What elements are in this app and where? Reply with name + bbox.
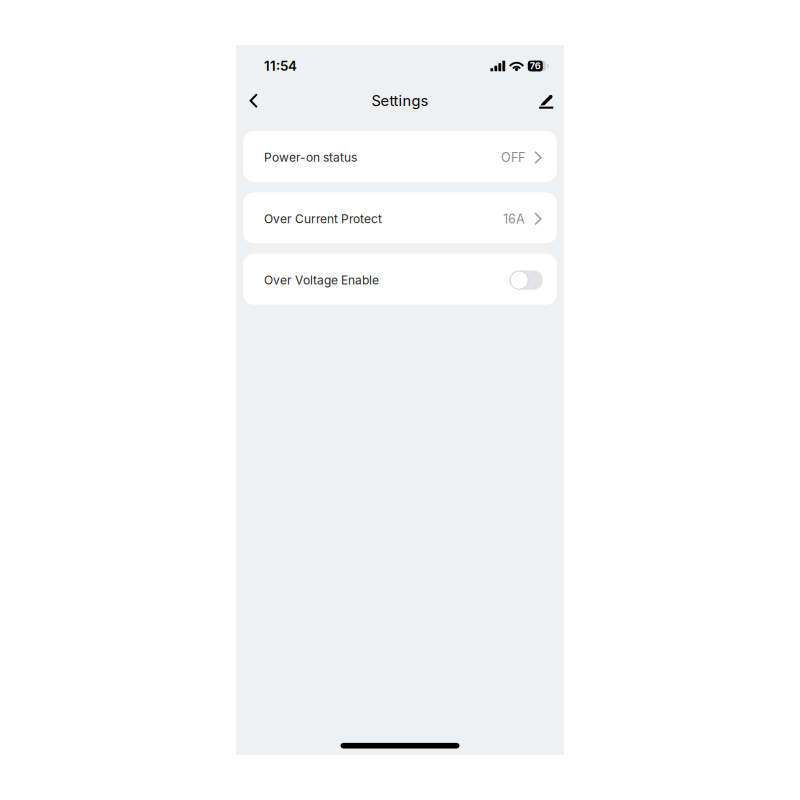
button[interactable]: Edit	[531, 87, 561, 114]
staticText: Power-on status	[264, 150, 357, 165]
staticText: Over Voltage Enable	[264, 273, 379, 287]
staticText: Over Current Protect	[264, 211, 382, 226]
button[interactable]: Power-on status	[243, 131, 557, 182]
staticText: 11:54	[264, 58, 297, 74]
button[interactable]: Over Current Protect	[243, 192, 557, 243]
staticText: 16A	[503, 211, 525, 226]
button[interactable]: Over Voltage Enable	[243, 254, 557, 305]
staticText: OFF	[501, 150, 525, 165]
staticText: 76	[530, 60, 541, 71]
button[interactable]: Back	[239, 87, 269, 114]
staticText: Settings	[371, 92, 428, 109]
